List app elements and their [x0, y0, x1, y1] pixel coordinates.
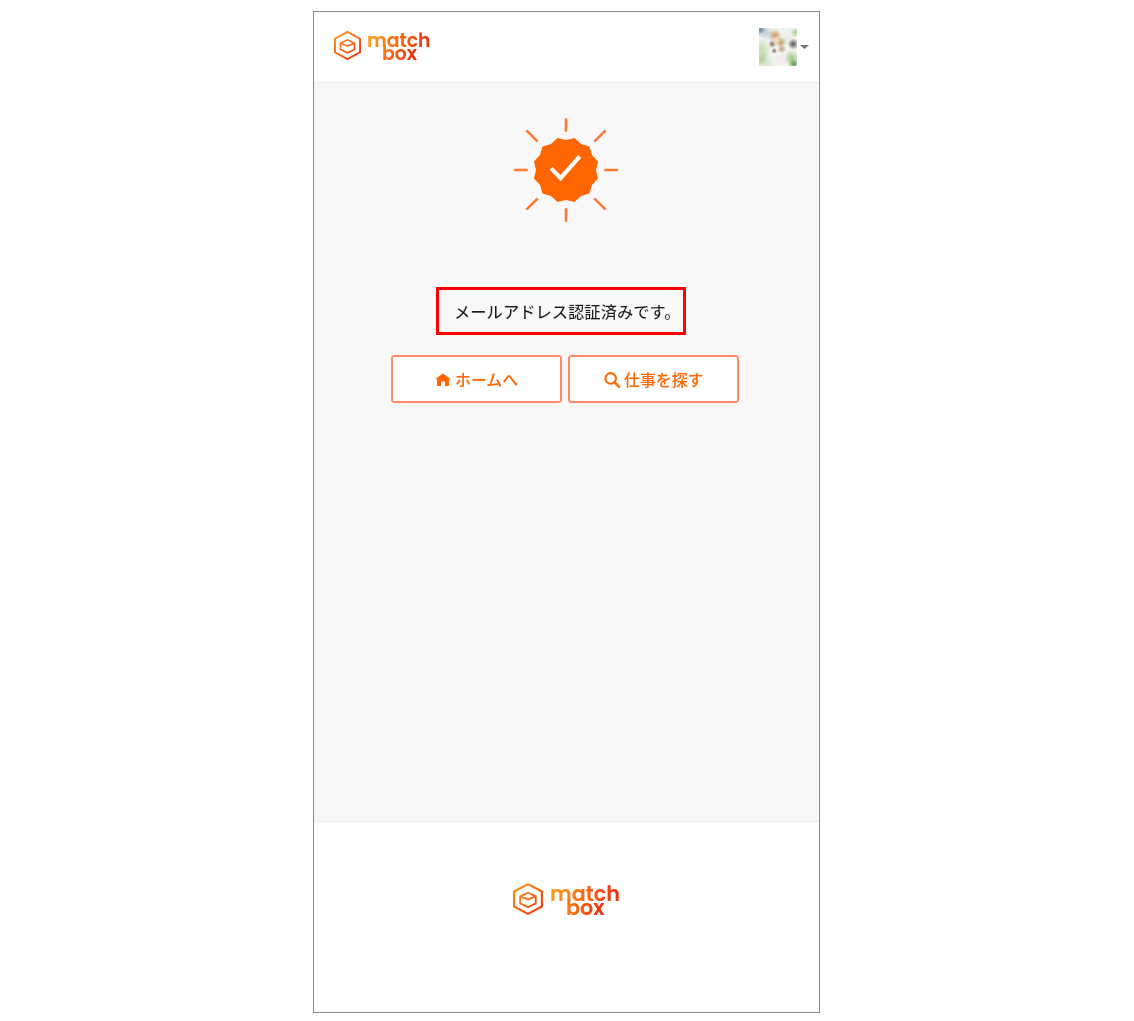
staticText: match: [550, 879, 620, 908]
button[interactable]: matchbox home: [334, 32, 431, 61]
staticText: 仕事を探す: [624, 368, 704, 391]
staticText: メールアドレス認証済みです。: [454, 299, 681, 323]
button[interactable]: matchbox: [513, 884, 620, 916]
staticText: box: [566, 893, 605, 922]
button[interactable]: 仕事を探す: [568, 355, 739, 403]
button[interactable]: ホームへ: [391, 355, 562, 403]
button[interactable]: Account menu: [759, 28, 809, 66]
staticText: match: [367, 27, 431, 53]
staticText: box: [382, 40, 417, 66]
staticText: ホームへ: [455, 368, 519, 391]
